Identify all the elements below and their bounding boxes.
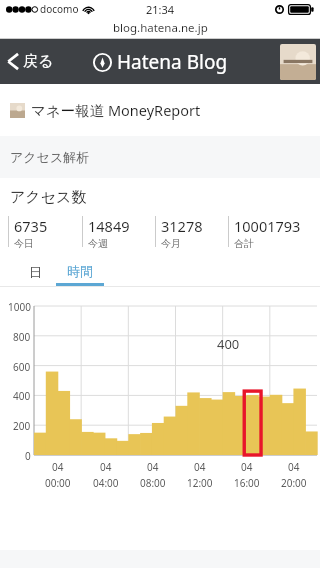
- staticText: 400: [13, 389, 31, 403]
- staticText: 04:00: [93, 476, 119, 490]
- staticText: 6735: [14, 216, 48, 236]
- button[interactable]: 日: [18, 258, 52, 286]
- button[interactable]: 戻る: [0, 45, 64, 78]
- button[interactable]: 6735: [8, 216, 82, 250]
- button[interactable]: 14849: [82, 216, 155, 250]
- staticText: 31278: [161, 216, 203, 236]
- staticText: 12:00: [187, 476, 213, 490]
- staticText: 04: [241, 460, 253, 474]
- staticText: 今週: [88, 237, 108, 250]
- staticText: 今日: [14, 237, 34, 250]
- staticText: 08:00: [140, 476, 166, 490]
- staticText: 600: [13, 360, 31, 374]
- staticText: 戻る: [23, 52, 54, 71]
- staticText: 00:00: [45, 476, 71, 490]
- button[interactable]: 時間: [56, 258, 104, 286]
- staticText: 16:00: [234, 476, 260, 490]
- staticText: docomo: [40, 2, 79, 16]
- staticText: 400: [217, 335, 240, 353]
- staticText: 04: [288, 460, 300, 474]
- staticText: Hatena Blog: [117, 49, 228, 75]
- staticText: 今月: [161, 237, 181, 250]
- staticText: 1000: [8, 300, 31, 314]
- staticText: アクセス解析: [10, 149, 90, 165]
- button[interactable]: マネー報道 MoneyReport: [0, 84, 320, 136]
- staticText: 21:34: [146, 2, 175, 17]
- staticText: 合計: [234, 237, 254, 250]
- staticText: 0: [25, 449, 31, 463]
- staticText: 800: [13, 330, 31, 344]
- staticText: 04: [52, 460, 64, 474]
- staticText: 04: [147, 460, 159, 474]
- staticText: 04: [194, 460, 206, 474]
- staticText: 200: [13, 419, 31, 433]
- button[interactable]: 10001793: [228, 216, 316, 250]
- staticText: 04: [100, 460, 112, 474]
- staticText: 20:00: [281, 476, 307, 490]
- button[interactable]: 31278: [155, 216, 228, 250]
- staticText: blog.hatena.ne.jp: [113, 20, 208, 36]
- staticText: 日: [29, 264, 42, 280]
- staticText: 時間: [67, 263, 93, 279]
- staticText: 10001793: [234, 216, 301, 236]
- button[interactable]: Blog profile image: [280, 44, 316, 80]
- staticText: アクセス数: [10, 188, 87, 207]
- staticText: マネー報道 MoneyReport: [31, 100, 201, 120]
- button[interactable]: blog.hatena.ne.jp: [0, 18, 320, 38]
- staticText: 14849: [88, 216, 130, 236]
